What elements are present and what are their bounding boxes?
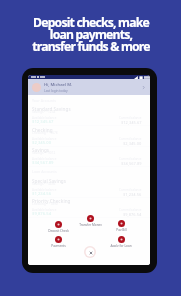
staticText: Pay Bill (116, 228, 127, 231)
staticText: Last login today (44, 89, 68, 93)
other: More (141, 85, 146, 90)
staticText: $2,345.00 (32, 140, 52, 146)
staticText: Apply for Loan (110, 244, 132, 247)
staticText: Checking • *5678 (32, 131, 58, 135)
button[interactable]: Transfer Money (76, 215, 104, 226)
staticText: Current balance (119, 157, 142, 161)
button[interactable]: Deposit Check (44, 221, 72, 232)
button[interactable]: Close menu (86, 248, 95, 257)
staticText: Loan Accounts (32, 169, 57, 174)
button[interactable]: Standard Savings (28, 105, 150, 126)
staticText: $12,345.67 (121, 120, 142, 125)
staticText: Checking (32, 127, 53, 133)
staticText: $1,234.56 (123, 192, 142, 197)
staticText: Hi, Michael M. (44, 82, 73, 88)
staticText: Checking • *7890 (32, 202, 58, 206)
button[interactable]: Special Savings (28, 177, 150, 198)
button[interactable]: Checking (28, 126, 150, 147)
staticText: Savings • *1234 (32, 110, 56, 114)
staticText: Current balance (119, 137, 142, 141)
button[interactable]: Apply for Loan (107, 236, 135, 247)
button[interactable]: Payments (44, 236, 72, 247)
staticText: Current balance (119, 208, 142, 212)
staticText: $34,567.89 (121, 161, 142, 166)
staticText: $34,567.89 (32, 160, 54, 166)
staticText: Available balance (32, 157, 57, 161)
button[interactable]: Hi, Michael M. (28, 79, 150, 95)
staticText: $2,345.00 (123, 141, 142, 146)
staticText: Available balance (32, 188, 57, 192)
staticText: Current balance (119, 188, 142, 192)
staticText: Available balance (32, 137, 57, 141)
staticText: Standard Savings (32, 106, 71, 112)
staticText: Savings • *3456 (32, 182, 56, 186)
staticText: Special Savings (32, 178, 66, 184)
staticText: Transfer Money (79, 223, 102, 226)
staticText: Deposit Check (48, 229, 69, 232)
staticText: Savings (32, 147, 50, 153)
button[interactable]: Priority Checking (28, 197, 150, 218)
staticText: $1,234.56 (32, 191, 52, 197)
staticText: Savings • *9012 (32, 151, 56, 155)
staticText: Available balance (32, 208, 57, 212)
staticText: Payments (51, 244, 66, 247)
staticText: Deposit checks, make loan payments, tran… (32, 14, 150, 55)
button[interactable]: Savings (28, 146, 150, 167)
staticText: $9,876.54 (123, 212, 142, 217)
staticText: $12,345.67 (32, 119, 54, 125)
staticText: Priority Checking (32, 198, 71, 204)
staticText: Your Accounts (32, 98, 57, 103)
staticText: Available balance (32, 116, 57, 120)
staticText: $9,876.54 (32, 211, 52, 217)
staticText: Current balance (119, 116, 142, 120)
button[interactable]: Pay Bill (107, 220, 135, 231)
